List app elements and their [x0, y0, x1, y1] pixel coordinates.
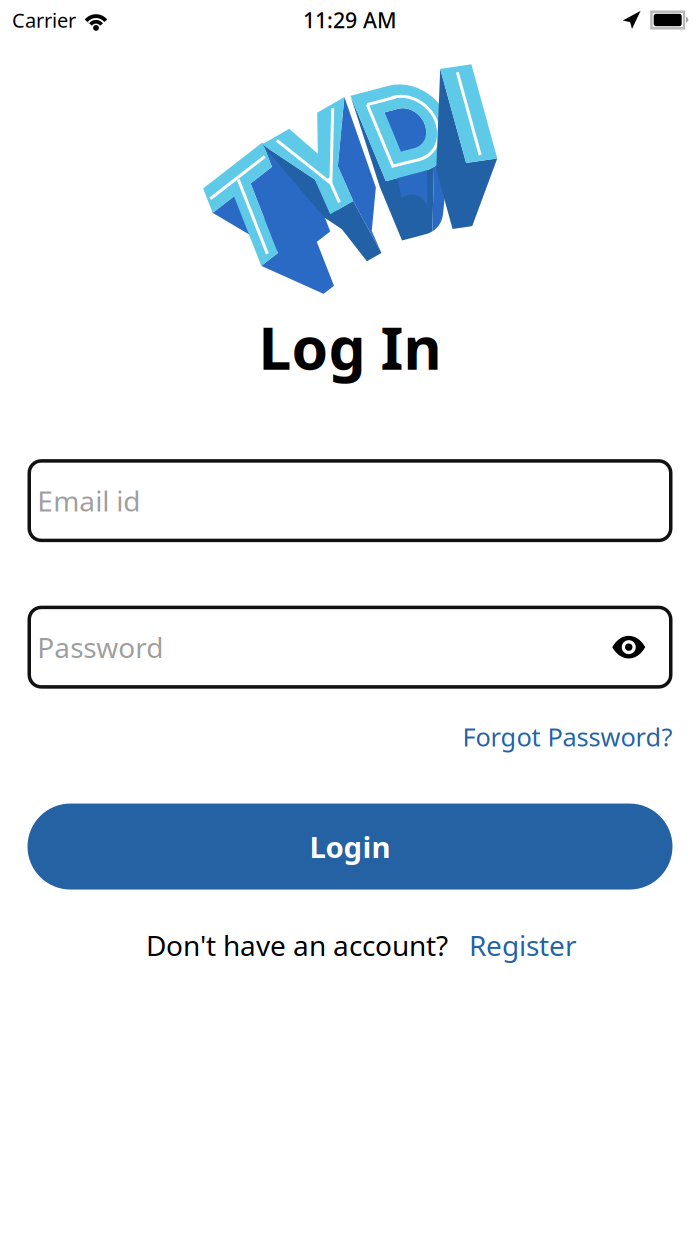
button[interactable]: Register — [469, 926, 577, 964]
staticText: Email id — [37, 482, 140, 519]
button[interactable]: Forgot Password? — [462, 720, 672, 753]
staticText: Carrier — [12, 7, 76, 33]
staticText: Log In — [258, 308, 441, 386]
staticText: Forgot Password? — [462, 720, 672, 753]
button[interactable]: Show password — [603, 621, 655, 674]
staticText: 11:29 AM — [303, 6, 397, 34]
button[interactable]: Login — [27, 803, 672, 889]
staticText: Password — [37, 629, 163, 666]
staticText: Don't have an account? — [146, 926, 448, 964]
staticText: Login — [309, 827, 390, 866]
staticText: Register — [469, 926, 577, 964]
